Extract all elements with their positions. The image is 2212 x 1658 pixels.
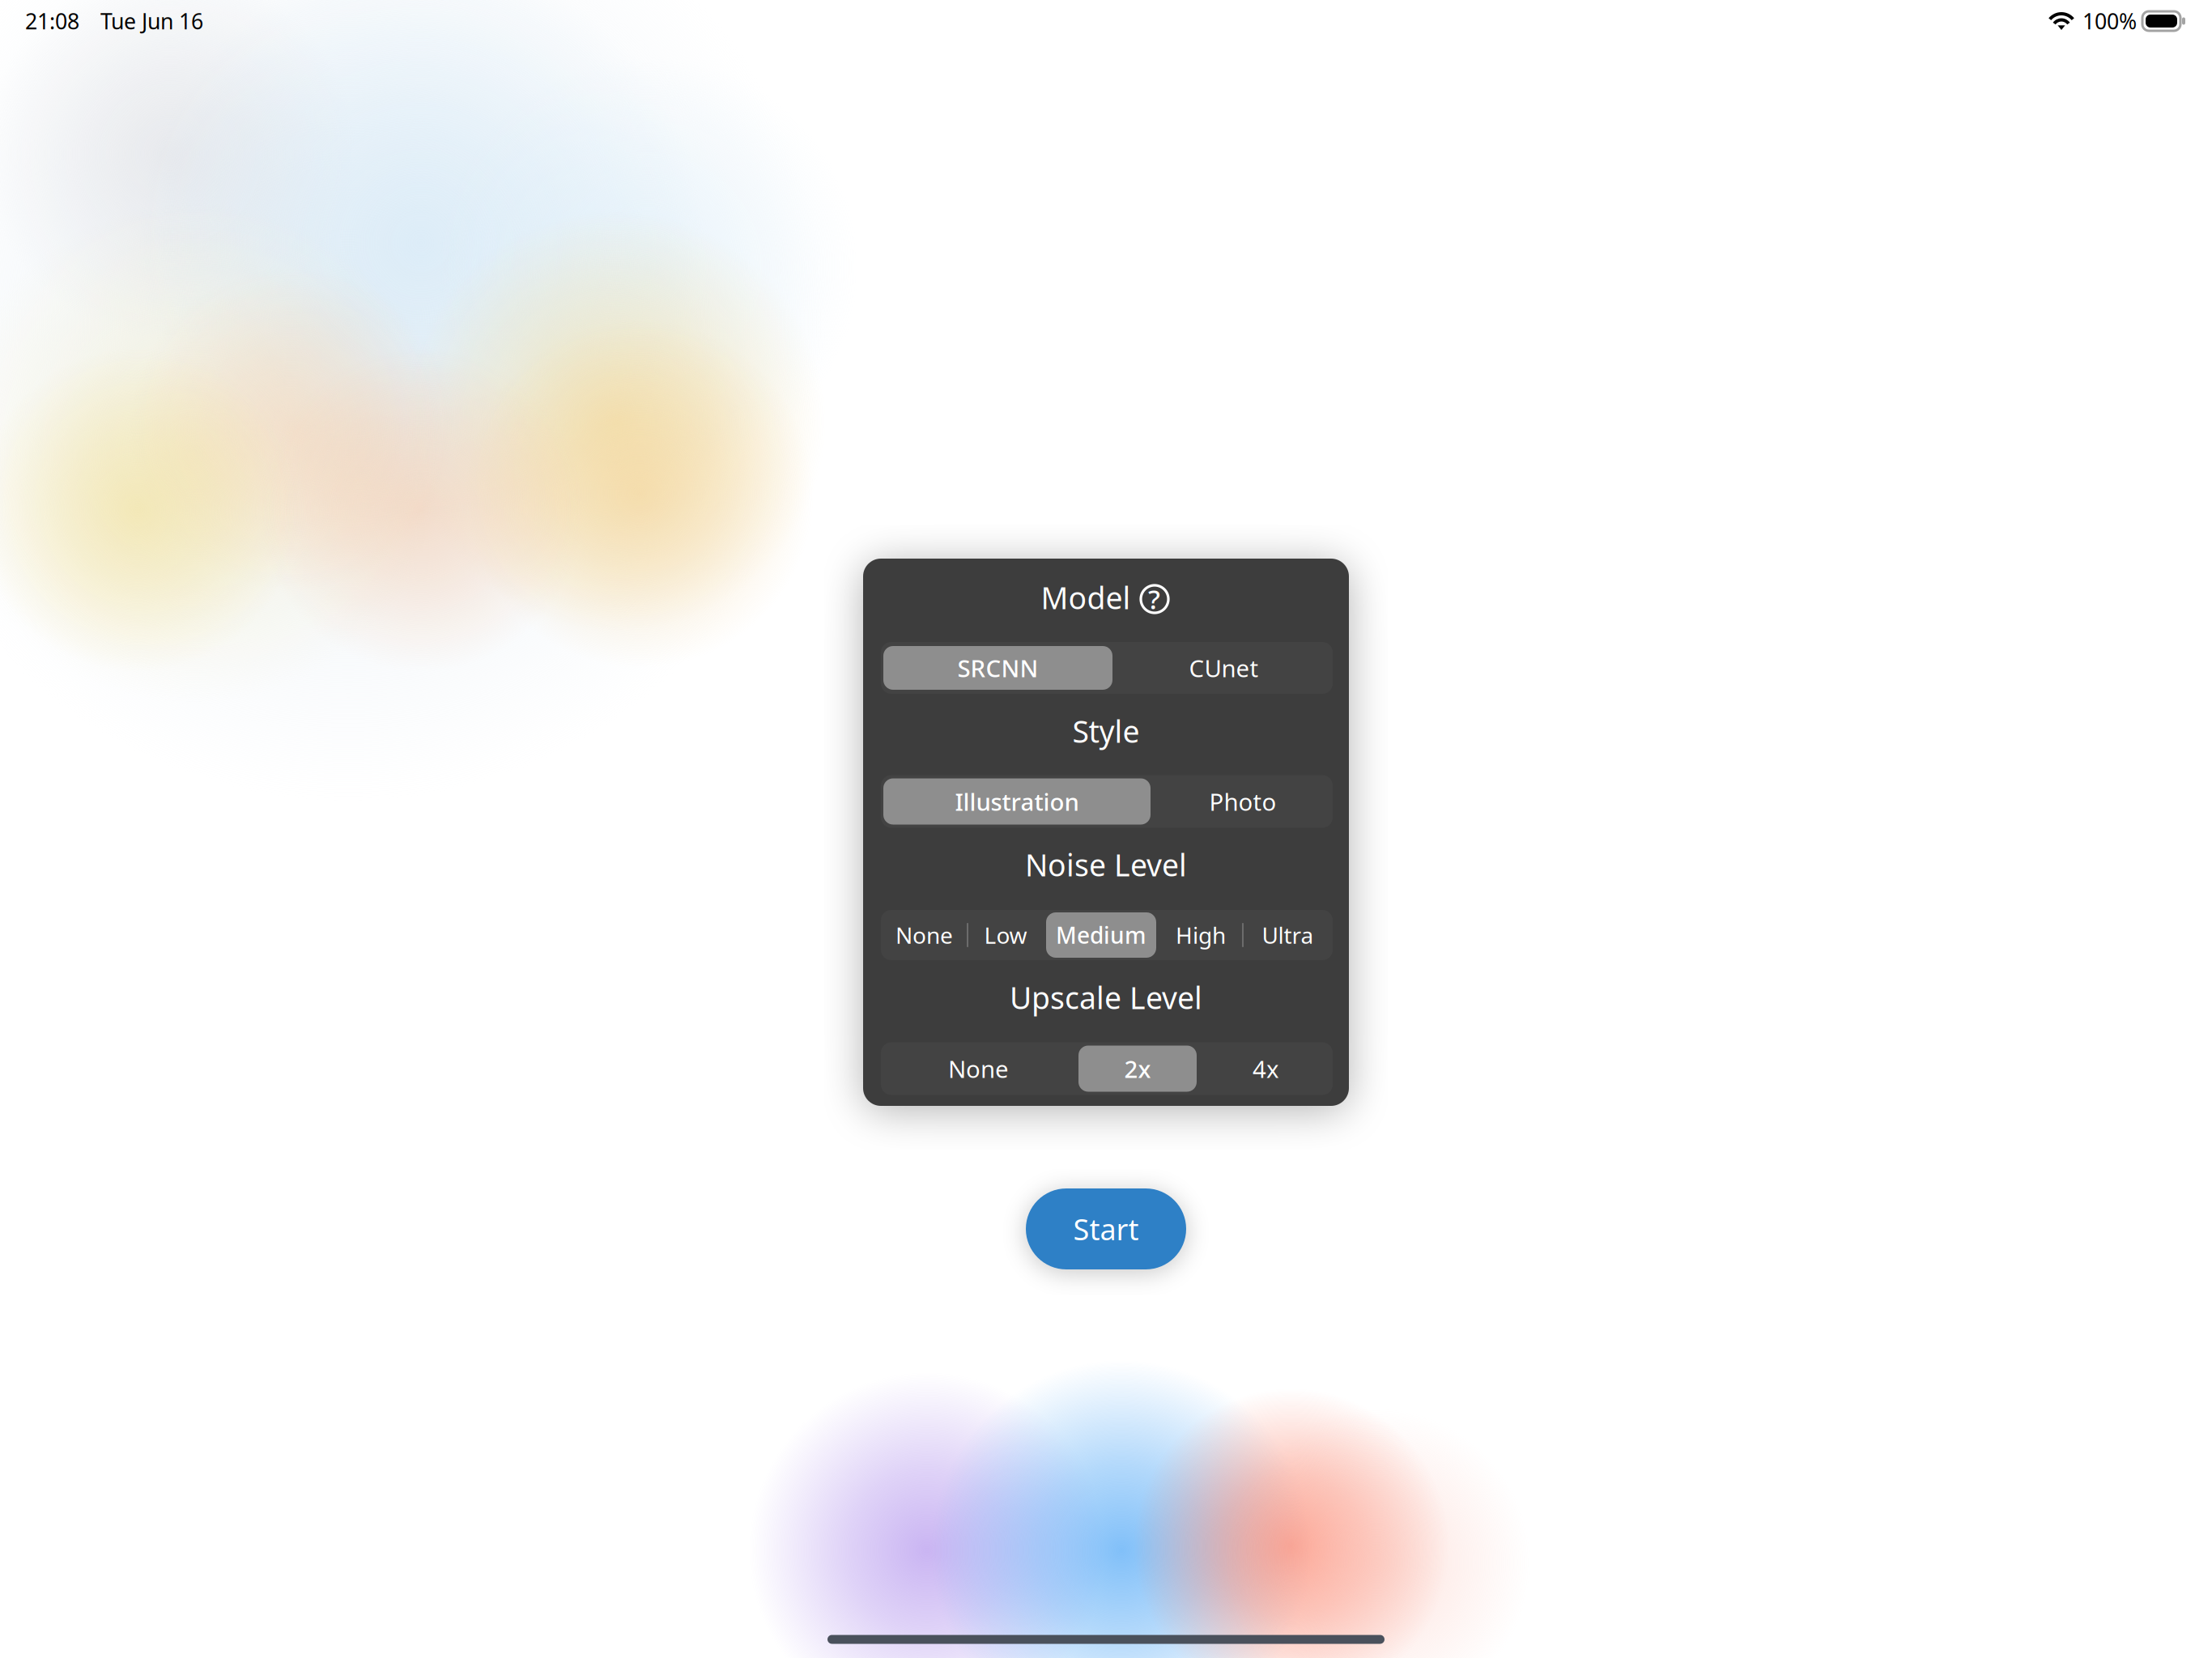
staticText: High	[1176, 920, 1226, 950]
staticText: SRCNN	[957, 652, 1038, 684]
staticText: 21:08	[25, 7, 79, 35]
staticText: Medium	[1056, 920, 1146, 950]
button[interactable]: CUnet	[1115, 642, 1333, 694]
staticText: Tue Jun 16	[100, 7, 203, 35]
button[interactable]: Ultra	[1243, 910, 1333, 960]
staticText: Noise Level	[1025, 845, 1187, 885]
staticText: ?	[1148, 581, 1160, 617]
button[interactable]: Illustration	[881, 775, 1153, 828]
staticText: Model	[1041, 577, 1131, 618]
staticText: 100%	[2082, 7, 2137, 35]
button[interactable]: 4x	[1199, 1042, 1333, 1095]
button[interactable]: Medium	[1044, 910, 1159, 960]
staticText: Style	[1072, 711, 1140, 751]
staticText: None	[895, 920, 953, 950]
staticText: 4x	[1253, 1053, 1279, 1084]
button[interactable]: 2x	[1076, 1042, 1199, 1095]
button[interactable]: Photo	[1153, 775, 1333, 828]
staticText: None	[948, 1053, 1009, 1084]
button[interactable]: SRCNN	[881, 642, 1115, 694]
staticText: Start	[1073, 1210, 1139, 1248]
button[interactable]: None	[881, 910, 968, 960]
button[interactable]: Start	[1026, 1188, 1186, 1269]
staticText: Low	[984, 920, 1027, 950]
button[interactable]: High	[1159, 910, 1243, 960]
button[interactable]: Model help	[1137, 581, 1172, 617]
staticText: Illustration	[955, 786, 1079, 817]
staticText: CUnet	[1189, 652, 1259, 684]
staticText: Ultra	[1262, 920, 1314, 950]
button[interactable]: None	[881, 1042, 1076, 1095]
button[interactable]: Low	[968, 910, 1044, 960]
staticText: Upscale Level	[1010, 977, 1202, 1017]
staticText: 2x	[1124, 1053, 1151, 1084]
staticText: Photo	[1209, 786, 1276, 817]
